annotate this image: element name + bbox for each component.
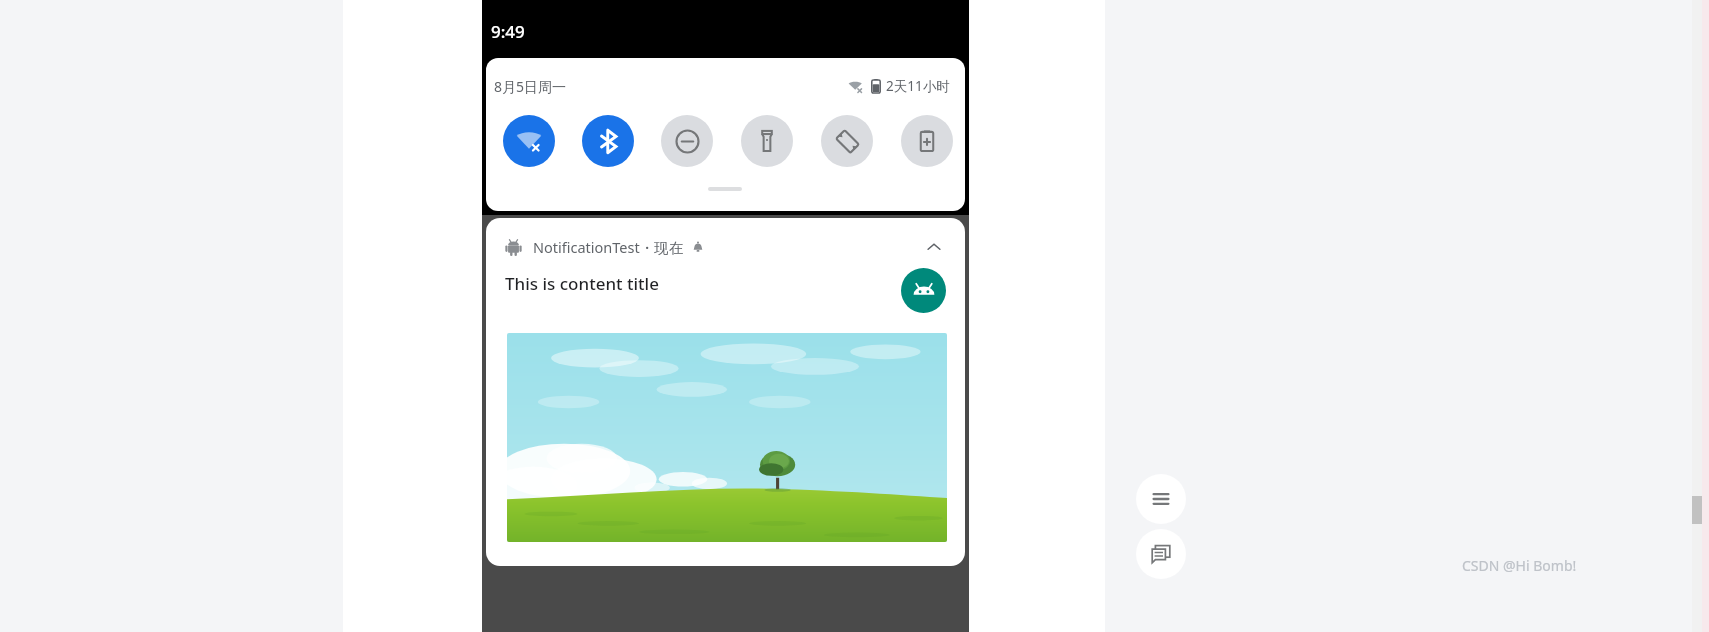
button[interactable]: Comments (1136, 529, 1186, 579)
staticText: NotificationTest・现在 (533, 237, 684, 257)
button[interactable]: Collapse (919, 234, 949, 260)
staticText: This is content title (505, 272, 659, 295)
staticText: 9:49 (491, 20, 525, 43)
staticText: CSDN @Hi Bomb! (1462, 556, 1577, 575)
staticText: 8月5日周一 (494, 77, 567, 96)
button[interactable]: Wi-Fi off (503, 115, 555, 167)
button[interactable]: Auto rotate (821, 115, 873, 167)
button[interactable]: Do not disturb (661, 115, 713, 167)
button[interactable]: Flashlight (741, 115, 793, 167)
staticText: 2天11小时 (886, 77, 950, 95)
button[interactable]: App avatar (901, 268, 946, 313)
button[interactable]: Bluetooth (582, 115, 634, 167)
button[interactable] (507, 333, 947, 542)
button[interactable]: Menu (1136, 474, 1186, 524)
button[interactable]: Battery saver (901, 115, 953, 167)
button[interactable]: NotificationTest・现在 (486, 234, 965, 260)
